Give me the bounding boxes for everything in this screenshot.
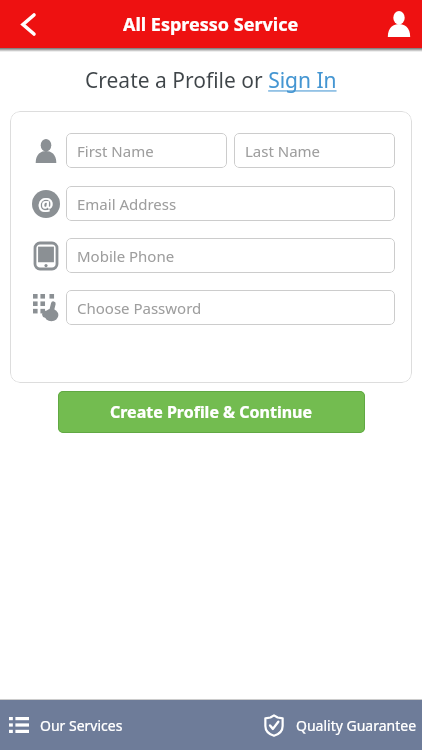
staticText: Our Services — [40, 716, 123, 735]
button[interactable] — [14, 10, 42, 38]
button[interactable] — [382, 7, 416, 41]
staticText: All Espresso Service — [123, 12, 299, 37]
button[interactable]: Create Profile & Continue — [58, 391, 365, 433]
button[interactable]: Last Name — [234, 133, 395, 168]
staticText: Last Name — [245, 141, 321, 161]
staticText: Choose Password — [77, 298, 202, 318]
button[interactable]: Quality Guarantee — [265, 700, 422, 750]
staticText: Email Address — [77, 194, 177, 214]
button[interactable]: Choose Password — [66, 290, 395, 325]
staticText: First Name — [77, 141, 154, 161]
button[interactable]: Create a Profile or Sign In — [85, 66, 337, 95]
staticText: @ — [38, 193, 54, 216]
button[interactable]: Our Services — [0, 700, 123, 750]
staticText: Create Profile & Continue — [110, 401, 313, 423]
button[interactable]: Email Address — [66, 186, 395, 221]
button[interactable]: Mobile Phone — [66, 238, 395, 273]
staticText: Mobile Phone — [77, 246, 175, 266]
button[interactable]: First Name — [66, 133, 227, 168]
staticText: Quality Guarantee — [296, 716, 417, 735]
